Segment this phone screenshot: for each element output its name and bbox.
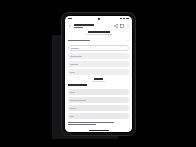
button[interactable]: More options — [125, 23, 130, 28]
button[interactable] — [68, 113, 129, 119]
button[interactable]: Back — [67, 23, 73, 29]
button[interactable] — [68, 69, 129, 75]
button[interactable] — [68, 45, 129, 51]
button[interactable] — [68, 38, 129, 43]
button[interactable] — [68, 61, 129, 67]
button[interactable]: Save — [119, 23, 125, 29]
button[interactable]: Share — [113, 23, 119, 29]
button[interactable] — [68, 97, 129, 103]
button[interactable] — [68, 53, 129, 59]
button[interactable] — [68, 89, 129, 95]
button[interactable] — [68, 105, 129, 111]
